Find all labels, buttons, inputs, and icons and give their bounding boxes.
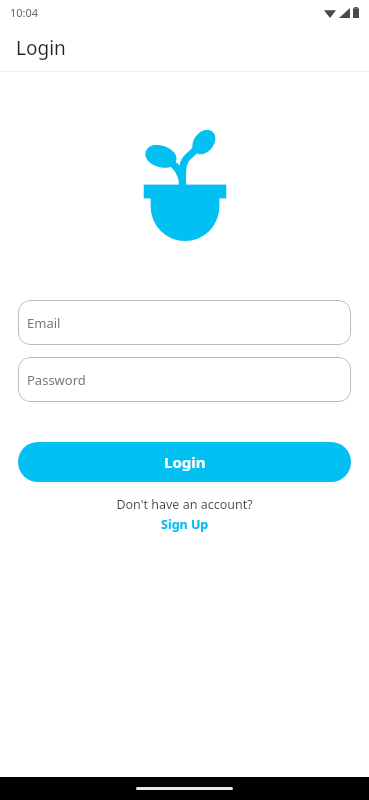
staticText: Login bbox=[16, 35, 66, 61]
other: Home gesture handle bbox=[136, 787, 233, 790]
staticText: Sign Up bbox=[161, 516, 209, 533]
staticText: Email bbox=[27, 314, 61, 332]
button[interactable]: Login bbox=[18, 442, 351, 482]
button[interactable]: Password bbox=[18, 357, 351, 402]
staticText: 10:04 bbox=[10, 5, 39, 20]
staticText: Login bbox=[164, 452, 206, 472]
button[interactable]: Email bbox=[18, 300, 351, 345]
staticText: Password bbox=[27, 371, 86, 389]
button[interactable]: Sign Up bbox=[157, 515, 213, 534]
staticText: Don't have an account? bbox=[116, 496, 253, 513]
